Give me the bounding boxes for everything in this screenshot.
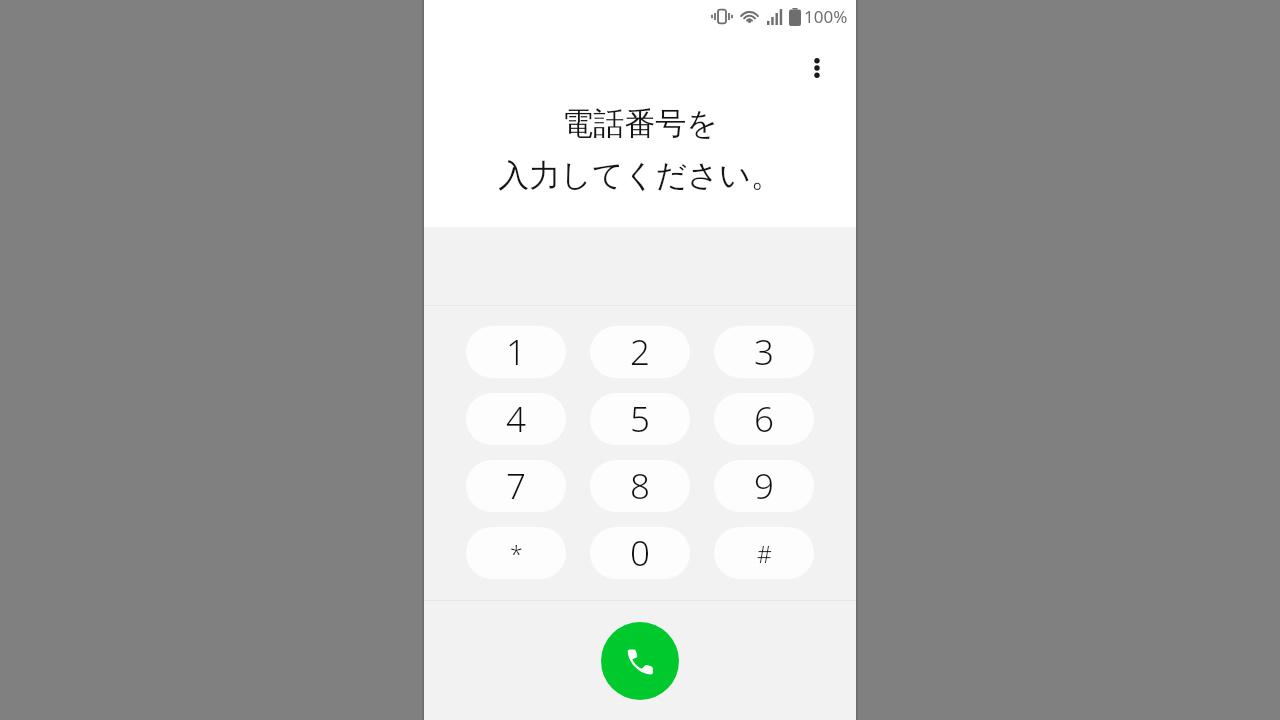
staticText: 電話番号を xyxy=(562,104,718,143)
button[interactable]: Call xyxy=(601,622,679,700)
button[interactable]: 8 xyxy=(590,460,690,512)
button[interactable]: More options xyxy=(793,44,841,92)
staticText: 6 xyxy=(754,395,774,443)
staticText: 100% xyxy=(804,5,848,28)
button[interactable]: 1 xyxy=(466,326,566,378)
button[interactable]: 0 xyxy=(590,527,690,579)
staticText: 8 xyxy=(630,462,650,510)
button[interactable]: 4 xyxy=(466,393,566,445)
staticText: 7 xyxy=(506,462,526,510)
staticText: # xyxy=(757,538,772,569)
button[interactable]: # xyxy=(714,527,814,579)
staticText: 入力してください。 xyxy=(498,156,782,195)
button[interactable]: * xyxy=(466,527,566,579)
staticText: 5 xyxy=(630,395,650,443)
staticText: 1 xyxy=(506,328,526,376)
button[interactable]: 6 xyxy=(714,393,814,445)
staticText: 2 xyxy=(630,328,650,376)
button[interactable]: 2 xyxy=(590,326,690,378)
button[interactable]: 5 xyxy=(590,393,690,445)
staticText: 4 xyxy=(506,395,526,443)
staticText: 0 xyxy=(630,529,650,577)
button[interactable]: 9 xyxy=(714,460,814,512)
button[interactable]: 7 xyxy=(466,460,566,512)
button[interactable]: 3 xyxy=(714,326,814,378)
staticText: 3 xyxy=(754,328,774,376)
staticText: 9 xyxy=(754,462,774,510)
staticText: * xyxy=(510,538,523,569)
